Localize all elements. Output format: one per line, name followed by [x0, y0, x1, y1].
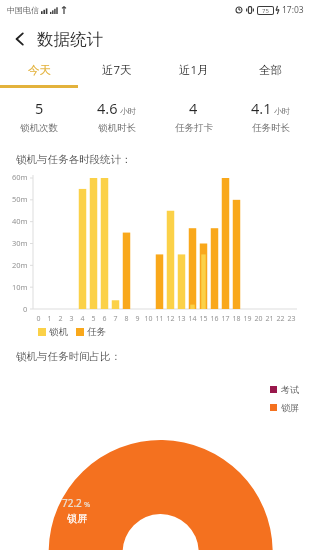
staticText: 18	[232, 314, 241, 324]
staticText: 任务	[87, 326, 106, 338]
staticText: 4.1	[251, 98, 272, 118]
staticText: 17	[221, 314, 230, 324]
staticText: 17:03	[282, 4, 304, 16]
button[interactable]: 全部	[232, 58, 309, 82]
staticText: 40m	[12, 216, 28, 226]
staticText: 锁机次数	[20, 122, 58, 134]
staticText: 3	[69, 314, 74, 324]
staticText: 16	[210, 314, 219, 324]
staticText: 锁屏	[67, 512, 87, 525]
staticText: 13	[177, 314, 186, 324]
staticText: 6	[102, 314, 107, 324]
staticText: 30m	[12, 238, 28, 248]
staticText: 15	[199, 314, 208, 324]
staticText: 0	[36, 314, 41, 324]
staticText: 22	[276, 314, 285, 324]
staticText: 20m	[12, 260, 28, 270]
staticText: 锁屏	[281, 402, 299, 413]
staticText: 全部	[259, 63, 282, 77]
staticText: 20	[254, 314, 263, 324]
staticText: 小时	[120, 106, 136, 116]
staticText: 1	[47, 314, 52, 324]
staticText: 小时	[274, 106, 290, 116]
staticText: 11	[155, 314, 164, 324]
staticText: 近1月	[179, 62, 209, 78]
button[interactable]: 今天	[0, 58, 78, 82]
staticText: 21	[265, 314, 274, 324]
staticText: 今天	[28, 63, 51, 77]
staticText: 4	[189, 98, 198, 118]
staticText: 8	[124, 314, 129, 324]
staticText: 10	[144, 314, 153, 324]
staticText: 任务打卡	[175, 122, 213, 134]
staticText: 12	[166, 314, 175, 324]
staticText: 锁机	[49, 326, 68, 338]
staticText: 5	[35, 98, 44, 118]
staticText: 9	[135, 314, 140, 324]
staticText: 19	[243, 314, 252, 324]
staticText: 4	[80, 314, 85, 324]
staticText: 72.2	[62, 496, 82, 510]
staticText: 数据统计	[37, 29, 103, 50]
staticText: 任务时长	[252, 122, 290, 134]
staticText: 考试	[281, 384, 299, 395]
staticText: 中国电信	[7, 5, 39, 15]
staticText: 锁机与任务时间占比：	[16, 350, 121, 363]
staticText: 5	[91, 314, 96, 324]
staticText: 60m	[12, 172, 28, 182]
staticText: 50m	[12, 194, 28, 204]
staticText: 23	[287, 314, 296, 324]
button[interactable]: 近1月	[155, 58, 232, 82]
button[interactable]: 近7天	[78, 58, 155, 82]
staticText: 0	[23, 304, 28, 314]
staticText: 75	[262, 7, 269, 14]
staticText: 锁机时长	[98, 122, 136, 134]
staticText: 4.6	[97, 98, 118, 118]
staticText: 锁机与任务各时段统计：	[16, 153, 132, 166]
staticText: 近7天	[102, 62, 132, 78]
staticText: 14	[188, 314, 197, 324]
staticText: 10m	[12, 282, 28, 292]
staticText: %	[84, 499, 91, 509]
staticText: 7	[113, 314, 118, 324]
button[interactable]: Back	[5, 24, 35, 54]
staticText: 2	[58, 314, 63, 324]
